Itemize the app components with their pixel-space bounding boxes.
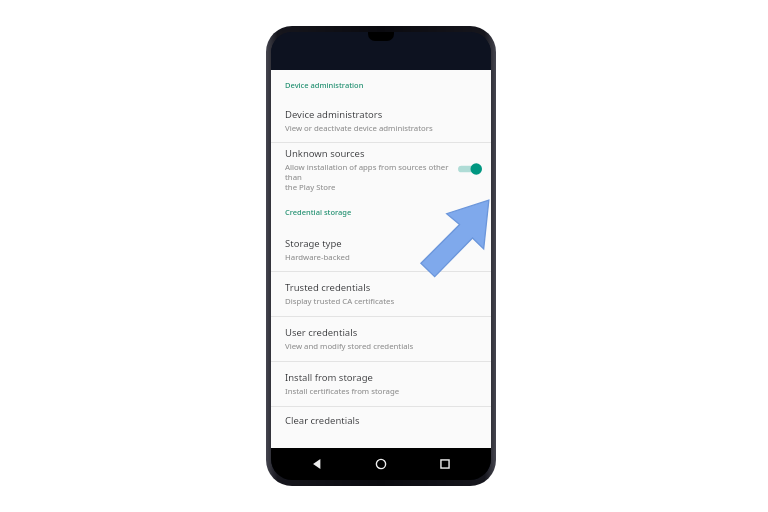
staticText: Storage type bbox=[285, 237, 342, 250]
button[interactable]: User credentials bbox=[271, 317, 491, 361]
staticText: Credential storage bbox=[285, 207, 352, 217]
button[interactable]: Back bbox=[299, 448, 335, 480]
staticText: Device administration bbox=[285, 80, 364, 90]
button[interactable]: Unknown sources bbox=[271, 143, 491, 195]
staticText: User credentials bbox=[285, 326, 358, 339]
button[interactable]: Device administrators bbox=[271, 100, 491, 142]
staticText: Unknown sources bbox=[285, 147, 365, 160]
button[interactable]: Clear credentials bbox=[271, 407, 491, 433]
staticText: View or deactivate device administrators bbox=[285, 123, 433, 134]
staticText: Device administrators bbox=[285, 108, 383, 121]
staticText: Install from storage bbox=[285, 371, 373, 384]
button[interactable]: Storage type bbox=[271, 229, 491, 271]
button[interactable]: Install from storage bbox=[271, 362, 491, 406]
staticText: Install certificates from storage bbox=[285, 386, 400, 397]
button[interactable]: Recent apps bbox=[427, 448, 463, 480]
staticText: Allow installation of apps from sources … bbox=[285, 162, 457, 192]
button[interactable]: Unknown sources toggle, on bbox=[457, 161, 483, 177]
staticText: Trusted credentials bbox=[285, 281, 371, 294]
staticText: Display trusted CA certificates bbox=[285, 296, 395, 307]
staticText: View and modify stored credentials bbox=[285, 341, 414, 352]
staticText: Clear credentials bbox=[285, 414, 360, 427]
button[interactable]: Trusted credentials bbox=[271, 272, 491, 316]
button[interactable]: Home bbox=[363, 448, 399, 480]
staticText: Hardware-backed bbox=[285, 252, 350, 263]
